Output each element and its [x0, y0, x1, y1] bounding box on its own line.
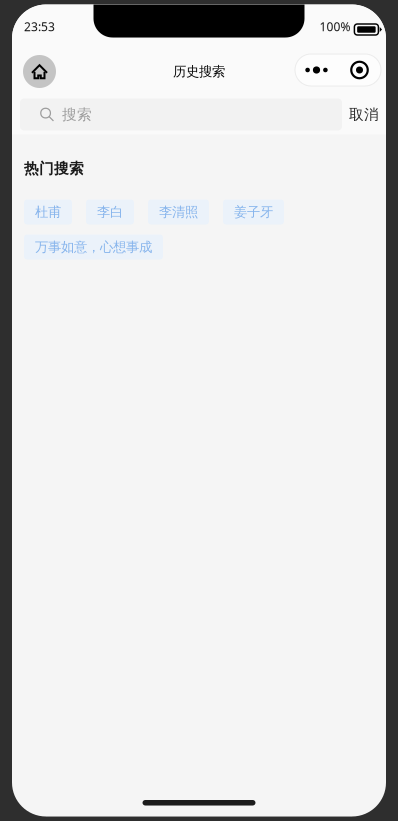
button[interactable]: 杜甫	[24, 199, 72, 224]
staticText: 李白	[97, 204, 123, 220]
staticText: 100%	[319, 18, 350, 34]
button[interactable]: 搜索	[20, 98, 342, 130]
staticText: 历史搜索	[173, 63, 225, 80]
staticText: 万事如意，心想事成	[35, 239, 152, 255]
button[interactable]: 取消	[342, 98, 386, 130]
staticText: 姜子牙	[234, 204, 273, 220]
button[interactable]: 李白	[86, 199, 134, 224]
staticText: 取消	[349, 105, 379, 123]
button[interactable]: More	[295, 54, 338, 86]
button[interactable]: 万事如意，心想事成	[24, 234, 163, 259]
button[interactable]: Home	[23, 55, 56, 88]
button[interactable]: 李清照	[148, 199, 209, 224]
button[interactable]: Close mini program	[338, 54, 381, 86]
staticText: 热门搜索	[24, 159, 84, 177]
button[interactable]: 姜子牙	[223, 199, 284, 224]
staticText: 杜甫	[35, 204, 61, 220]
staticText: 搜索	[62, 105, 92, 123]
staticText: 23:53	[24, 18, 55, 34]
staticText: 李清照	[159, 204, 198, 220]
